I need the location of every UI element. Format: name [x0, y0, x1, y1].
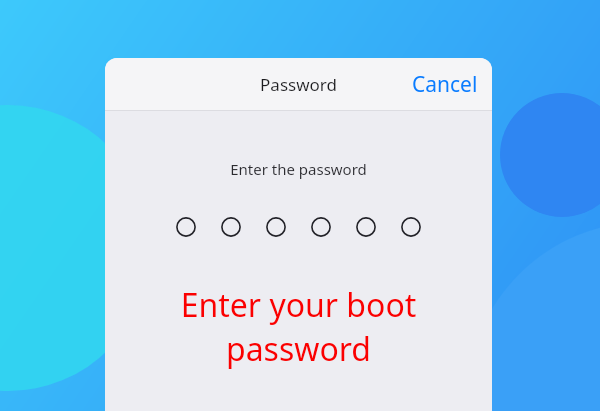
staticText: Password	[260, 73, 337, 96]
staticText: Enter your boot password	[105, 283, 492, 371]
staticText: Cancel	[412, 70, 478, 99]
button[interactable]: Cancel	[398, 58, 492, 110]
staticText: Enter the password	[230, 159, 367, 179]
button[interactable]: Password entry field	[172, 213, 425, 241]
